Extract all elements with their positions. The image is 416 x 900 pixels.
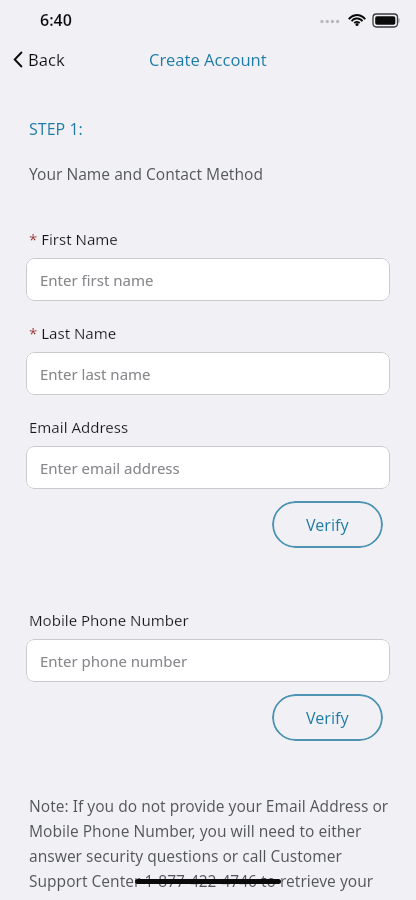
staticText: Enter last name xyxy=(40,364,151,384)
button[interactable]: Enter first name xyxy=(26,258,390,301)
staticText: Enter email address xyxy=(40,458,180,478)
staticText: Verify xyxy=(306,514,349,536)
staticText: * First Name xyxy=(29,229,118,249)
staticText: Note: If you do not provide your Email A… xyxy=(29,795,392,891)
button[interactable]: Verify xyxy=(272,694,383,741)
button[interactable]: Enter email address xyxy=(26,446,390,489)
staticText: Email Address xyxy=(29,417,129,437)
staticText: 6:40 xyxy=(40,9,72,31)
button[interactable]: Enter phone number xyxy=(26,639,390,682)
staticText: Back xyxy=(28,48,65,70)
staticText: * Last Name xyxy=(29,323,117,343)
staticText: Mobile Phone Number xyxy=(29,610,189,630)
staticText: Enter first name xyxy=(40,270,154,290)
button[interactable]: Back xyxy=(0,44,75,74)
staticText: Create Account xyxy=(149,48,267,70)
button[interactable]: Verify xyxy=(272,501,383,548)
staticText: Enter phone number xyxy=(40,651,188,671)
staticText: STEP 1: xyxy=(29,118,83,140)
staticText: Verify xyxy=(306,707,349,729)
button[interactable]: Enter last name xyxy=(26,352,390,395)
other: Back xyxy=(14,52,23,67)
staticText: Your Name and Contact Method xyxy=(29,163,263,184)
